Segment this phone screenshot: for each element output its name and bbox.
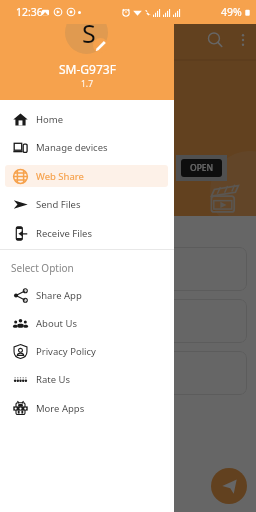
- button[interactable]: [10, 351, 247, 395]
- button[interactable]: Receive Files: [5, 222, 168, 244]
- staticText: 12:36: [16, 5, 43, 19]
- button[interactable]: Send: [211, 468, 247, 504]
- button[interactable]: About Us: [5, 312, 168, 334]
- staticText: S: [82, 16, 96, 50]
- staticText: OPEN: [190, 162, 214, 174]
- staticText: 49%: [221, 5, 242, 19]
- staticText: Manage devices: [36, 141, 108, 154]
- button[interactable]: OPEN: [181, 159, 222, 177]
- staticText: Share App: [36, 289, 82, 302]
- button[interactable]: Edit profile: [93, 38, 108, 53]
- staticText: About Us: [36, 317, 77, 330]
- staticText: 1.7: [81, 78, 94, 90]
- button[interactable]: More Apps: [5, 397, 168, 419]
- button[interactable]: [10, 247, 247, 291]
- button[interactable]: Send Files: [5, 193, 168, 215]
- staticText: Send Files: [36, 198, 81, 211]
- button[interactable]: Rate Us: [5, 368, 168, 390]
- staticText: Home: [36, 113, 64, 126]
- staticText: Rate Us: [36, 373, 70, 386]
- button[interactable]: Share App: [5, 284, 168, 306]
- staticText: More Apps: [36, 402, 85, 415]
- staticText: SM-G973F: [59, 61, 116, 77]
- staticText: Receive Files: [36, 227, 93, 240]
- button[interactable]: [10, 299, 247, 343]
- staticText: Web Share: [36, 170, 84, 183]
- button[interactable]: Manage devices: [5, 136, 168, 158]
- button[interactable]: More options: [230, 27, 256, 53]
- button[interactable]: Search: [202, 27, 228, 53]
- button[interactable]: Web Share: [5, 165, 168, 187]
- staticText: Privacy Policy: [36, 345, 96, 358]
- button[interactable]: Home: [5, 108, 168, 130]
- button[interactable]: Privacy Policy: [5, 340, 168, 362]
- staticText: Select Option: [11, 261, 74, 275]
